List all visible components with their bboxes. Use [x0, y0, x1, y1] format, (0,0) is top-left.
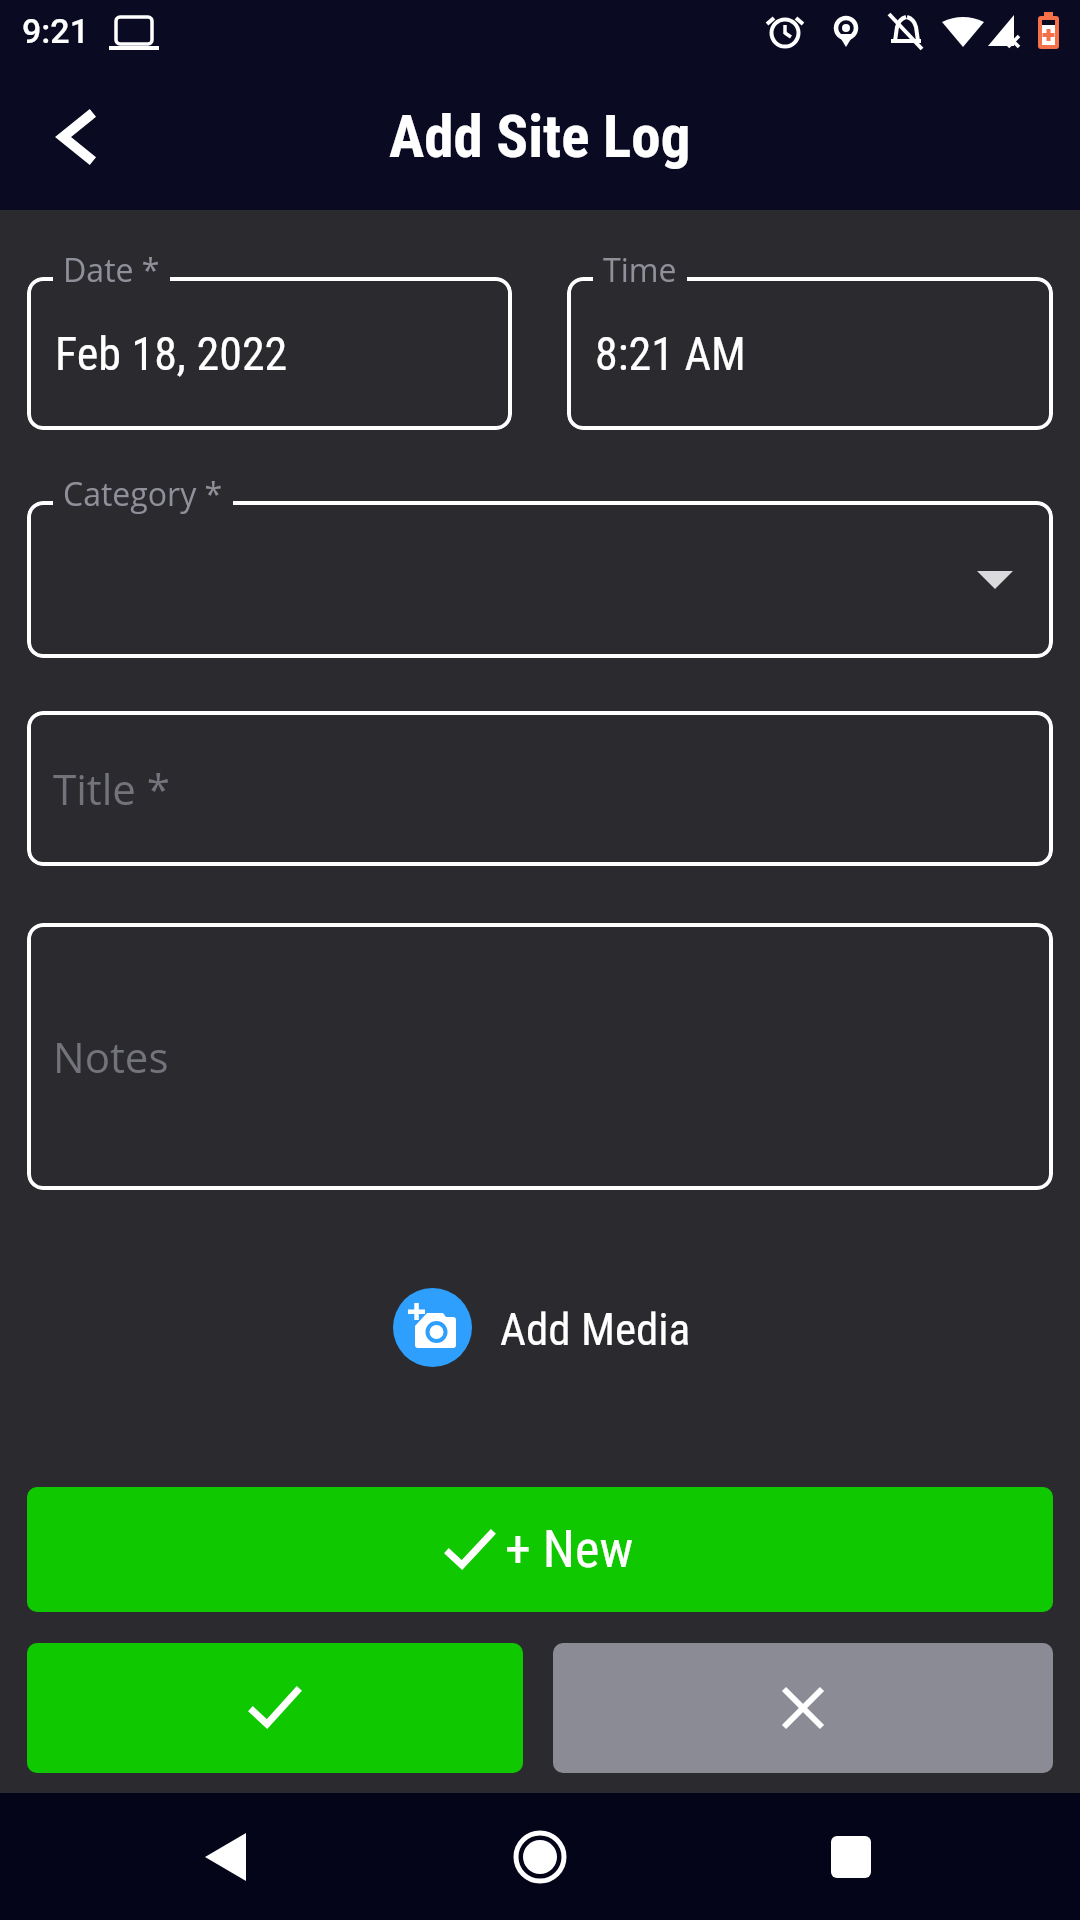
staticText: Add Site Log — [389, 102, 691, 171]
staticText: 8:21 AM — [595, 327, 746, 381]
staticText: Time — [603, 248, 677, 292]
staticText: Add Media — [500, 1303, 691, 1356]
staticText: Notes — [53, 1028, 169, 1085]
staticText: Title * — [53, 760, 170, 817]
staticText: Feb 18, 2022 — [55, 327, 288, 381]
staticText: Date * — [63, 248, 160, 292]
staticText: + New — [505, 1519, 634, 1580]
staticText: 9:21 — [22, 11, 89, 51]
staticText: Category * — [63, 472, 223, 516]
